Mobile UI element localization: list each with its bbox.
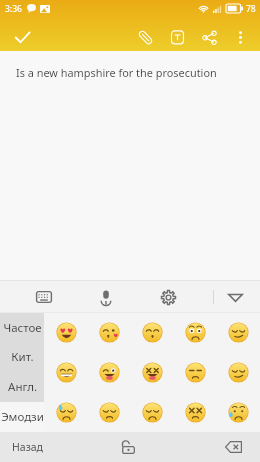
button[interactable]: Emoji [174,313,217,352]
button[interactable]: Emoji [44,352,88,392]
button[interactable]: Keyboard [28,281,60,313]
button[interactable]: Emoji [131,392,174,432]
button[interactable]: Emoji [88,392,131,432]
button[interactable]: Unlock [110,432,146,462]
button[interactable]: More options [225,22,255,52]
staticText: Частое [3,320,42,336]
button[interactable]: Format text [162,22,192,52]
button[interactable]: Emoji [88,313,131,352]
button[interactable]: Emoji [131,352,174,392]
button[interactable]: Emoji [174,392,217,432]
button[interactable]: Attach [130,22,160,52]
button[interactable]: Settings [152,281,184,313]
staticText: 78 [246,3,256,15]
button[interactable]: Emoji [44,313,88,352]
button[interactable]: Emoji [217,392,260,432]
staticText: 3:36 [5,3,22,15]
button[interactable]: Кит. [0,342,44,372]
staticText: Is a new hampshire for the prosecution [16,65,217,80]
button[interactable]: Done [6,21,38,53]
button[interactable]: Hide keyboard [219,281,251,313]
button[interactable]: Эмодзи [0,402,44,432]
button[interactable]: Англ. [0,372,44,402]
staticText: Кит. [11,349,34,365]
button[interactable]: Emoji [88,352,131,392]
button[interactable]: Voice input [90,281,122,313]
button[interactable]: Emoji [217,313,260,352]
button[interactable]: Частое [0,313,44,342]
staticText: Эмодзи [1,409,44,425]
staticText: Назад [12,440,43,454]
staticText: Англ. [8,379,37,395]
button[interactable]: Emoji [44,392,88,432]
button[interactable]: Emoji [131,313,174,352]
button[interactable]: Share [194,22,224,52]
button[interactable]: Emoji [174,352,217,392]
button[interactable]: Backspace [215,432,251,462]
button[interactable]: Назад [0,432,60,462]
button[interactable]: Emoji [217,352,260,392]
